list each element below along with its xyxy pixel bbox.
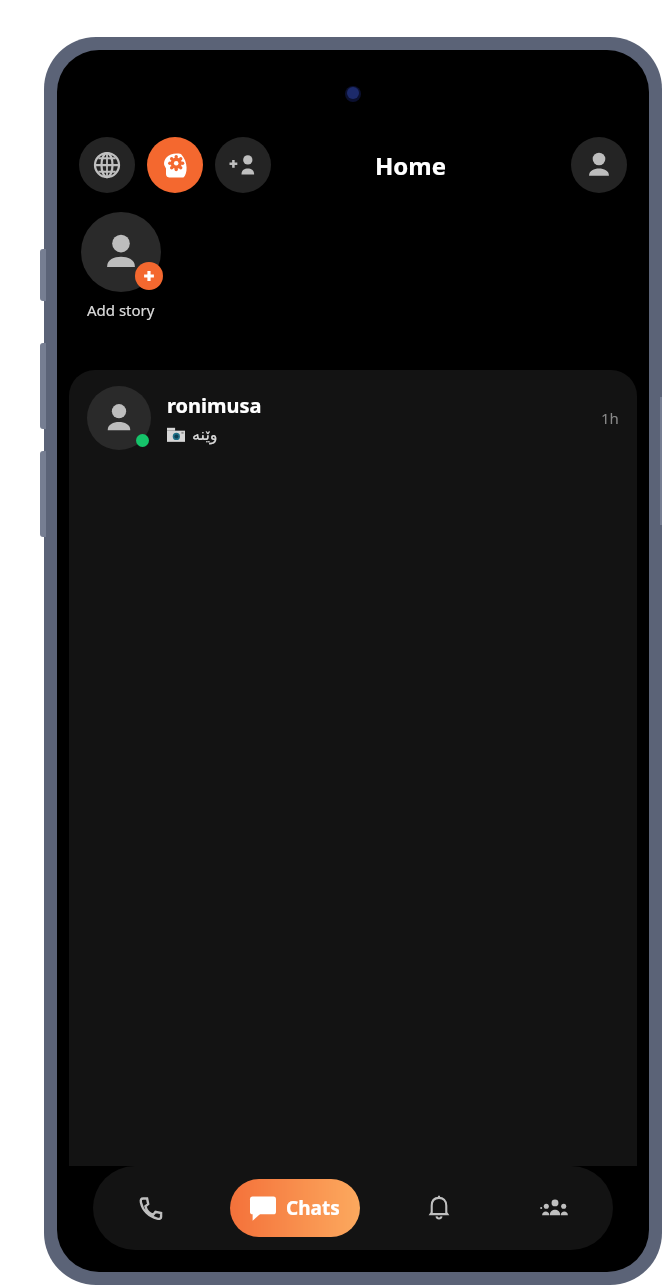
button[interactable]: Add contact — [215, 137, 271, 193]
staticText: Add story — [87, 300, 155, 320]
staticText: وێنە — [192, 425, 218, 444]
button[interactable]: ronimusa — [69, 370, 637, 466]
button[interactable]: Notifications — [381, 1166, 497, 1250]
button[interactable]: AI assistant — [147, 137, 203, 193]
button[interactable]: Chats — [208, 1166, 381, 1250]
button[interactable] — [81, 212, 161, 292]
staticText: Chats — [286, 1195, 340, 1221]
staticText: Home — [375, 149, 447, 182]
button[interactable]: Profile — [571, 137, 627, 193]
staticText: 1h — [601, 408, 619, 428]
button[interactable]: Language — [79, 137, 135, 193]
staticText: ronimusa — [167, 392, 262, 419]
button[interactable]: Groups — [497, 1166, 613, 1250]
button[interactable]: Calls — [93, 1166, 208, 1250]
